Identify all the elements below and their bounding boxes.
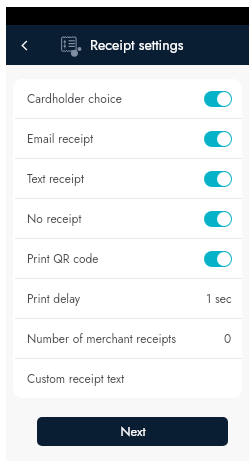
staticText: Cardholder choice [27, 90, 122, 107]
button[interactable]: Toggle on [204, 251, 232, 267]
button[interactable]: Custom receipt text [13, 359, 242, 398]
button[interactable]: Cardholder choice [13, 79, 242, 118]
staticText: Print delay [27, 290, 81, 307]
staticText: 0 [224, 330, 232, 347]
button[interactable]: Back [13, 34, 35, 56]
button[interactable]: Number of merchant receipts [13, 319, 242, 358]
button[interactable]: Toggle on [204, 91, 232, 107]
staticText: Text receipt [27, 170, 84, 187]
button[interactable]: Next [37, 417, 228, 446]
button[interactable]: Toggle on [204, 211, 232, 227]
staticText: Email receipt [27, 130, 94, 147]
button[interactable]: Print QR code [13, 239, 242, 278]
button[interactable]: Text receipt [13, 159, 242, 198]
button[interactable]: Toggle on [204, 171, 232, 187]
button[interactable]: No receipt [13, 199, 242, 238]
staticText: Custom receipt text [27, 370, 125, 387]
staticText: No receipt [27, 210, 82, 227]
button[interactable]: Toggle on [204, 131, 232, 147]
staticText: Print QR code [27, 250, 99, 267]
staticText: Next [120, 422, 146, 441]
staticText: Number of merchant receipts [27, 330, 177, 347]
button[interactable]: Print delay [13, 279, 242, 318]
button[interactable]: Email receipt [13, 119, 242, 158]
staticText: Receipt settings [90, 35, 184, 56]
staticText: 1 sec [206, 290, 232, 307]
